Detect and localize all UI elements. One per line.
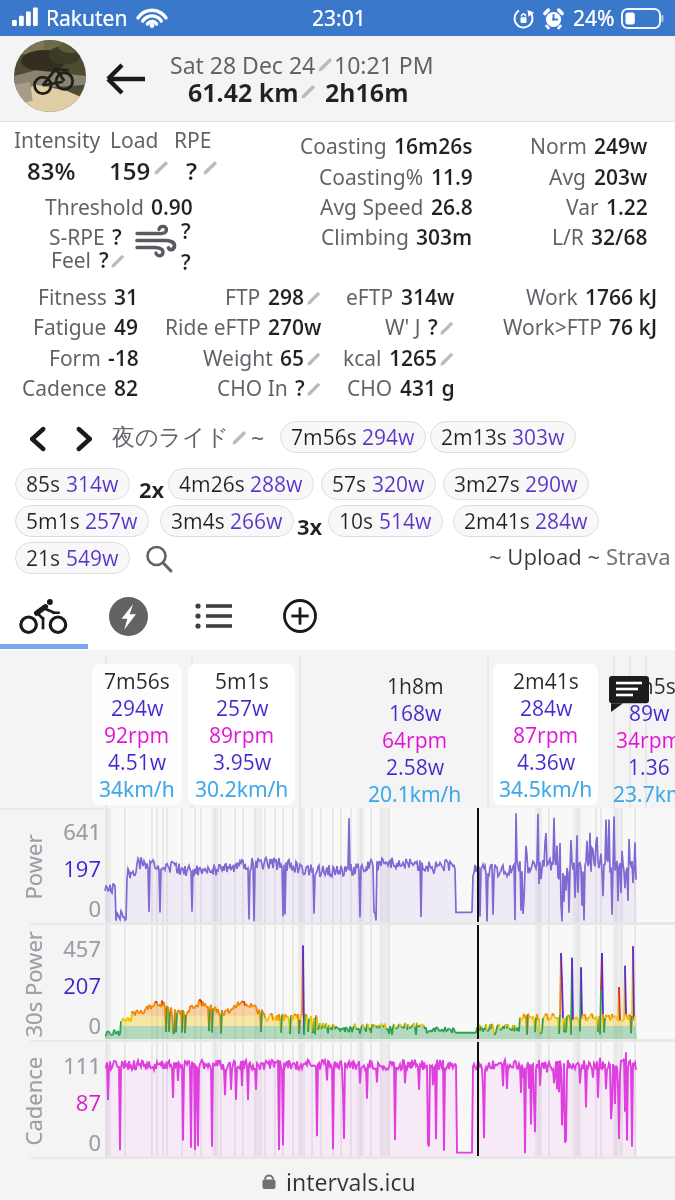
staticText: 2m41s	[513, 667, 579, 694]
staticText: 266w	[230, 507, 283, 536]
staticText: 4m26s	[179, 470, 245, 499]
button[interactable]: 2m41s	[493, 664, 598, 805]
staticText: 320w	[372, 470, 425, 499]
staticText: Fitness	[38, 283, 107, 312]
button[interactable]: 5m1s	[15, 505, 149, 537]
button[interactable]: Add interval	[258, 588, 342, 644]
button[interactable]: 21s	[15, 542, 130, 574]
staticText: 257w	[85, 507, 138, 536]
staticText: 11.9	[431, 163, 473, 192]
staticText: 2m41s	[464, 507, 530, 536]
button[interactable]: Previous interval	[20, 421, 56, 457]
staticText: Cadence	[22, 374, 107, 403]
staticText: 5m1s	[215, 667, 269, 694]
button[interactable]: 5m1s	[188, 664, 295, 805]
staticText: Coasting	[300, 132, 387, 161]
staticText: 314w	[401, 283, 455, 312]
button[interactable]: Back	[100, 53, 152, 105]
staticText: 23:01	[312, 4, 366, 33]
staticText: 0m5s	[622, 672, 675, 699]
button[interactable]: 3m27s	[443, 468, 589, 500]
staticText: ?	[186, 154, 198, 187]
button[interactable]: Next interval	[66, 421, 102, 457]
staticText: 270w	[268, 313, 322, 342]
button[interactable]: Ride overview	[2, 588, 86, 644]
button[interactable]: 57s	[321, 468, 436, 500]
staticText: Weight	[203, 344, 273, 373]
button[interactable]: ~ Upload ~	[489, 540, 671, 572]
staticText: 89w	[629, 699, 670, 726]
staticText: CHO	[347, 374, 393, 403]
staticText: 7m56s	[104, 667, 170, 694]
staticText: 10:21 PM	[334, 49, 434, 79]
staticText: 1h8m	[387, 672, 444, 699]
staticText: 87	[41, 1087, 101, 1117]
staticText: ?	[99, 246, 109, 275]
staticText: 23.7km	[613, 780, 675, 807]
button[interactable]: Power curve	[86, 588, 170, 644]
button[interactable]: 3m4s	[160, 505, 294, 537]
staticText: ~	[251, 422, 265, 453]
staticText: 30s Power	[17, 930, 47, 1037]
staticText: 34rpm	[616, 726, 675, 753]
staticText: Cadence	[17, 1056, 47, 1145]
staticText: 288w	[250, 470, 303, 499]
staticText: 1.36	[628, 753, 670, 780]
button[interactable]: 10s	[328, 505, 443, 537]
staticText: S-RPE	[49, 223, 105, 252]
staticText: 10s	[339, 507, 374, 536]
staticText: Avg Speed	[320, 193, 424, 222]
staticText: 159	[109, 154, 151, 187]
staticText: 303m	[416, 223, 473, 252]
staticText: Strava	[606, 541, 671, 571]
staticText: 249w	[594, 132, 648, 161]
button[interactable]: 2m41s	[453, 505, 599, 537]
staticText: 24%	[573, 4, 615, 33]
staticText: 3m4s	[171, 507, 225, 536]
staticText: 16m26s	[394, 132, 473, 161]
staticText: 2.58w	[386, 753, 445, 780]
button[interactable]: Search	[142, 542, 178, 578]
button[interactable]: 0m5s	[604, 672, 675, 807]
button[interactable]: 7m56s	[92, 664, 182, 805]
staticText: Intensity	[14, 126, 101, 155]
staticText: 197	[41, 853, 101, 883]
staticText: 64rpm	[382, 726, 448, 753]
staticText: 76 kJ	[609, 313, 658, 342]
button[interactable]: 4m26s	[168, 468, 314, 500]
staticText: 21s	[26, 544, 61, 573]
staticText: 82	[114, 374, 139, 403]
staticText: Sat 28 Dec 24	[170, 49, 316, 79]
staticText: 31	[114, 283, 139, 312]
staticText: 89rpm	[209, 721, 275, 748]
staticText: 207	[41, 970, 101, 1000]
staticText: 7m56s	[291, 423, 357, 452]
staticText: 34.5km/h	[499, 775, 593, 802]
staticText: 257w	[216, 694, 269, 721]
staticText: Fatigue	[33, 313, 107, 342]
staticText: 3x	[297, 511, 323, 541]
button[interactable]: 1h8m	[352, 672, 478, 807]
button[interactable]: 7m56s	[280, 421, 426, 453]
staticText: 57s	[332, 470, 367, 499]
staticText: Work	[526, 283, 578, 312]
staticText: ?	[181, 217, 191, 246]
staticText: 549w	[66, 544, 119, 573]
button[interactable]: 85s	[15, 468, 130, 500]
staticText: 65	[280, 344, 305, 373]
staticText: eFTP	[346, 283, 394, 312]
staticText: kcal	[343, 344, 382, 373]
staticText: Rakuten	[46, 4, 128, 33]
staticText: 0.90	[151, 193, 193, 222]
staticText: Coasting%	[319, 163, 424, 192]
staticText: ?	[428, 313, 438, 342]
staticText: ?	[112, 223, 122, 252]
button[interactable]: Profile photo	[14, 40, 86, 112]
staticText: 49	[114, 313, 139, 342]
staticText: Avg	[549, 163, 587, 192]
button[interactable]: Intervals list	[172, 588, 256, 644]
button[interactable]: 2m13s	[430, 421, 576, 453]
staticText: 457	[41, 933, 101, 963]
staticText: 32/68	[591, 223, 648, 252]
staticText: 0	[41, 1127, 101, 1157]
